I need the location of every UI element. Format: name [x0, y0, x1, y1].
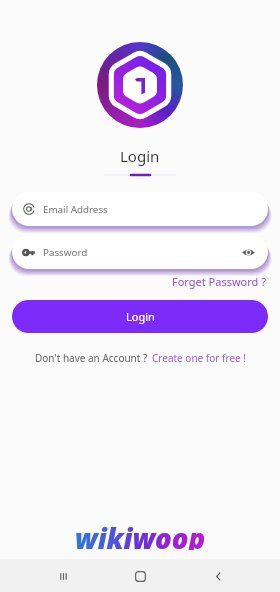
staticText: Email Address	[43, 203, 108, 216]
staticText: Don't have an Account ?	[35, 351, 148, 365]
button[interactable]: Login	[12, 300, 268, 333]
staticText: Create one for free !	[152, 351, 246, 365]
button[interactable]: Create one for free !	[152, 351, 246, 365]
button[interactable]: Recent apps	[48, 561, 78, 591]
staticText: Login	[126, 309, 155, 324]
staticText: Login	[120, 146, 160, 166]
button[interactable]: Home	[125, 561, 155, 591]
staticText: Password	[43, 246, 238, 259]
staticText: wikiwoop	[75, 520, 206, 550]
button[interactable]: Show password	[238, 242, 258, 262]
button[interactable]: Forget Password ?	[172, 273, 280, 290]
button[interactable]: Back	[203, 561, 233, 591]
button[interactable]: Email Address	[12, 192, 268, 226]
button[interactable]: Password	[12, 235, 268, 269]
staticText: Forget Password ?	[172, 274, 266, 289]
